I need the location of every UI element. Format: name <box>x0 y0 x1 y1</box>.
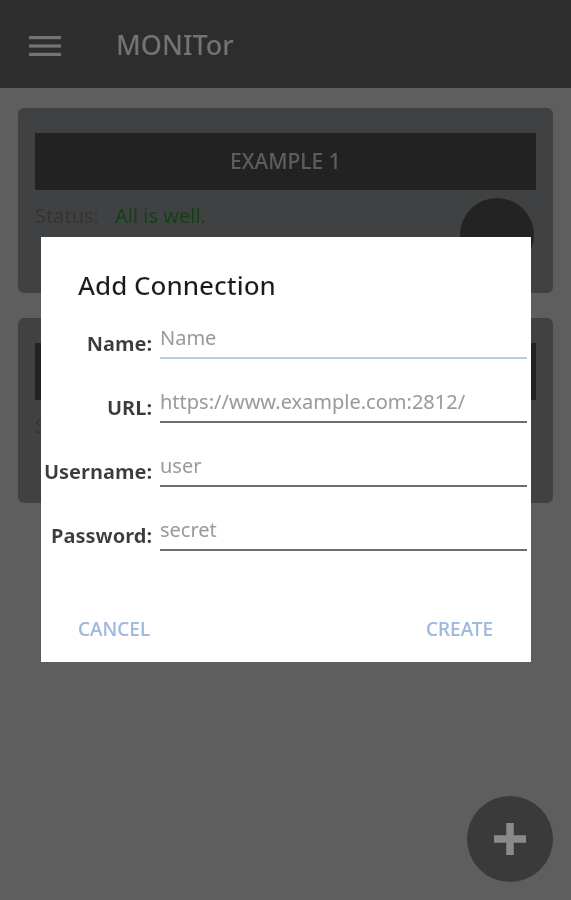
button[interactable]: Open navigation menu <box>18 24 72 68</box>
staticText: CREATE <box>426 616 494 642</box>
staticText: Status: <box>35 412 99 439</box>
staticText: CANCEL <box>78 616 151 642</box>
staticText: https://www.example.com:2812/ <box>160 388 466 415</box>
staticText: user <box>160 452 202 479</box>
staticText: Username: <box>41 458 152 485</box>
button[interactable]: Name: <box>41 324 531 388</box>
staticText: MONITor <box>116 26 234 63</box>
staticText: All is well. <box>115 412 206 439</box>
staticText: EXAMPLE 2 <box>230 357 341 386</box>
staticText: secret <box>160 516 217 543</box>
button[interactable]: Add connection <box>467 796 553 882</box>
button[interactable]: CANCEL <box>65 608 164 650</box>
staticText: Add Connection <box>78 267 276 302</box>
staticText: Name: <box>41 330 152 357</box>
staticText: Status: <box>35 202 99 229</box>
button[interactable]: Connection status <box>460 198 534 272</box>
button[interactable]: EXAMPLE 1 <box>18 108 553 293</box>
staticText: All is well. <box>115 202 206 229</box>
button[interactable]: CREATE <box>413 608 507 650</box>
staticText: Password: <box>41 522 152 549</box>
staticText: Name <box>160 324 217 351</box>
staticText: EXAMPLE 1 <box>230 147 341 176</box>
button[interactable]: Password: <box>41 516 531 580</box>
button[interactable]: Username: <box>41 452 531 516</box>
button[interactable]: URL: <box>41 388 531 452</box>
button[interactable]: EXAMPLE 2 <box>18 318 553 503</box>
staticText: URL: <box>41 394 152 421</box>
